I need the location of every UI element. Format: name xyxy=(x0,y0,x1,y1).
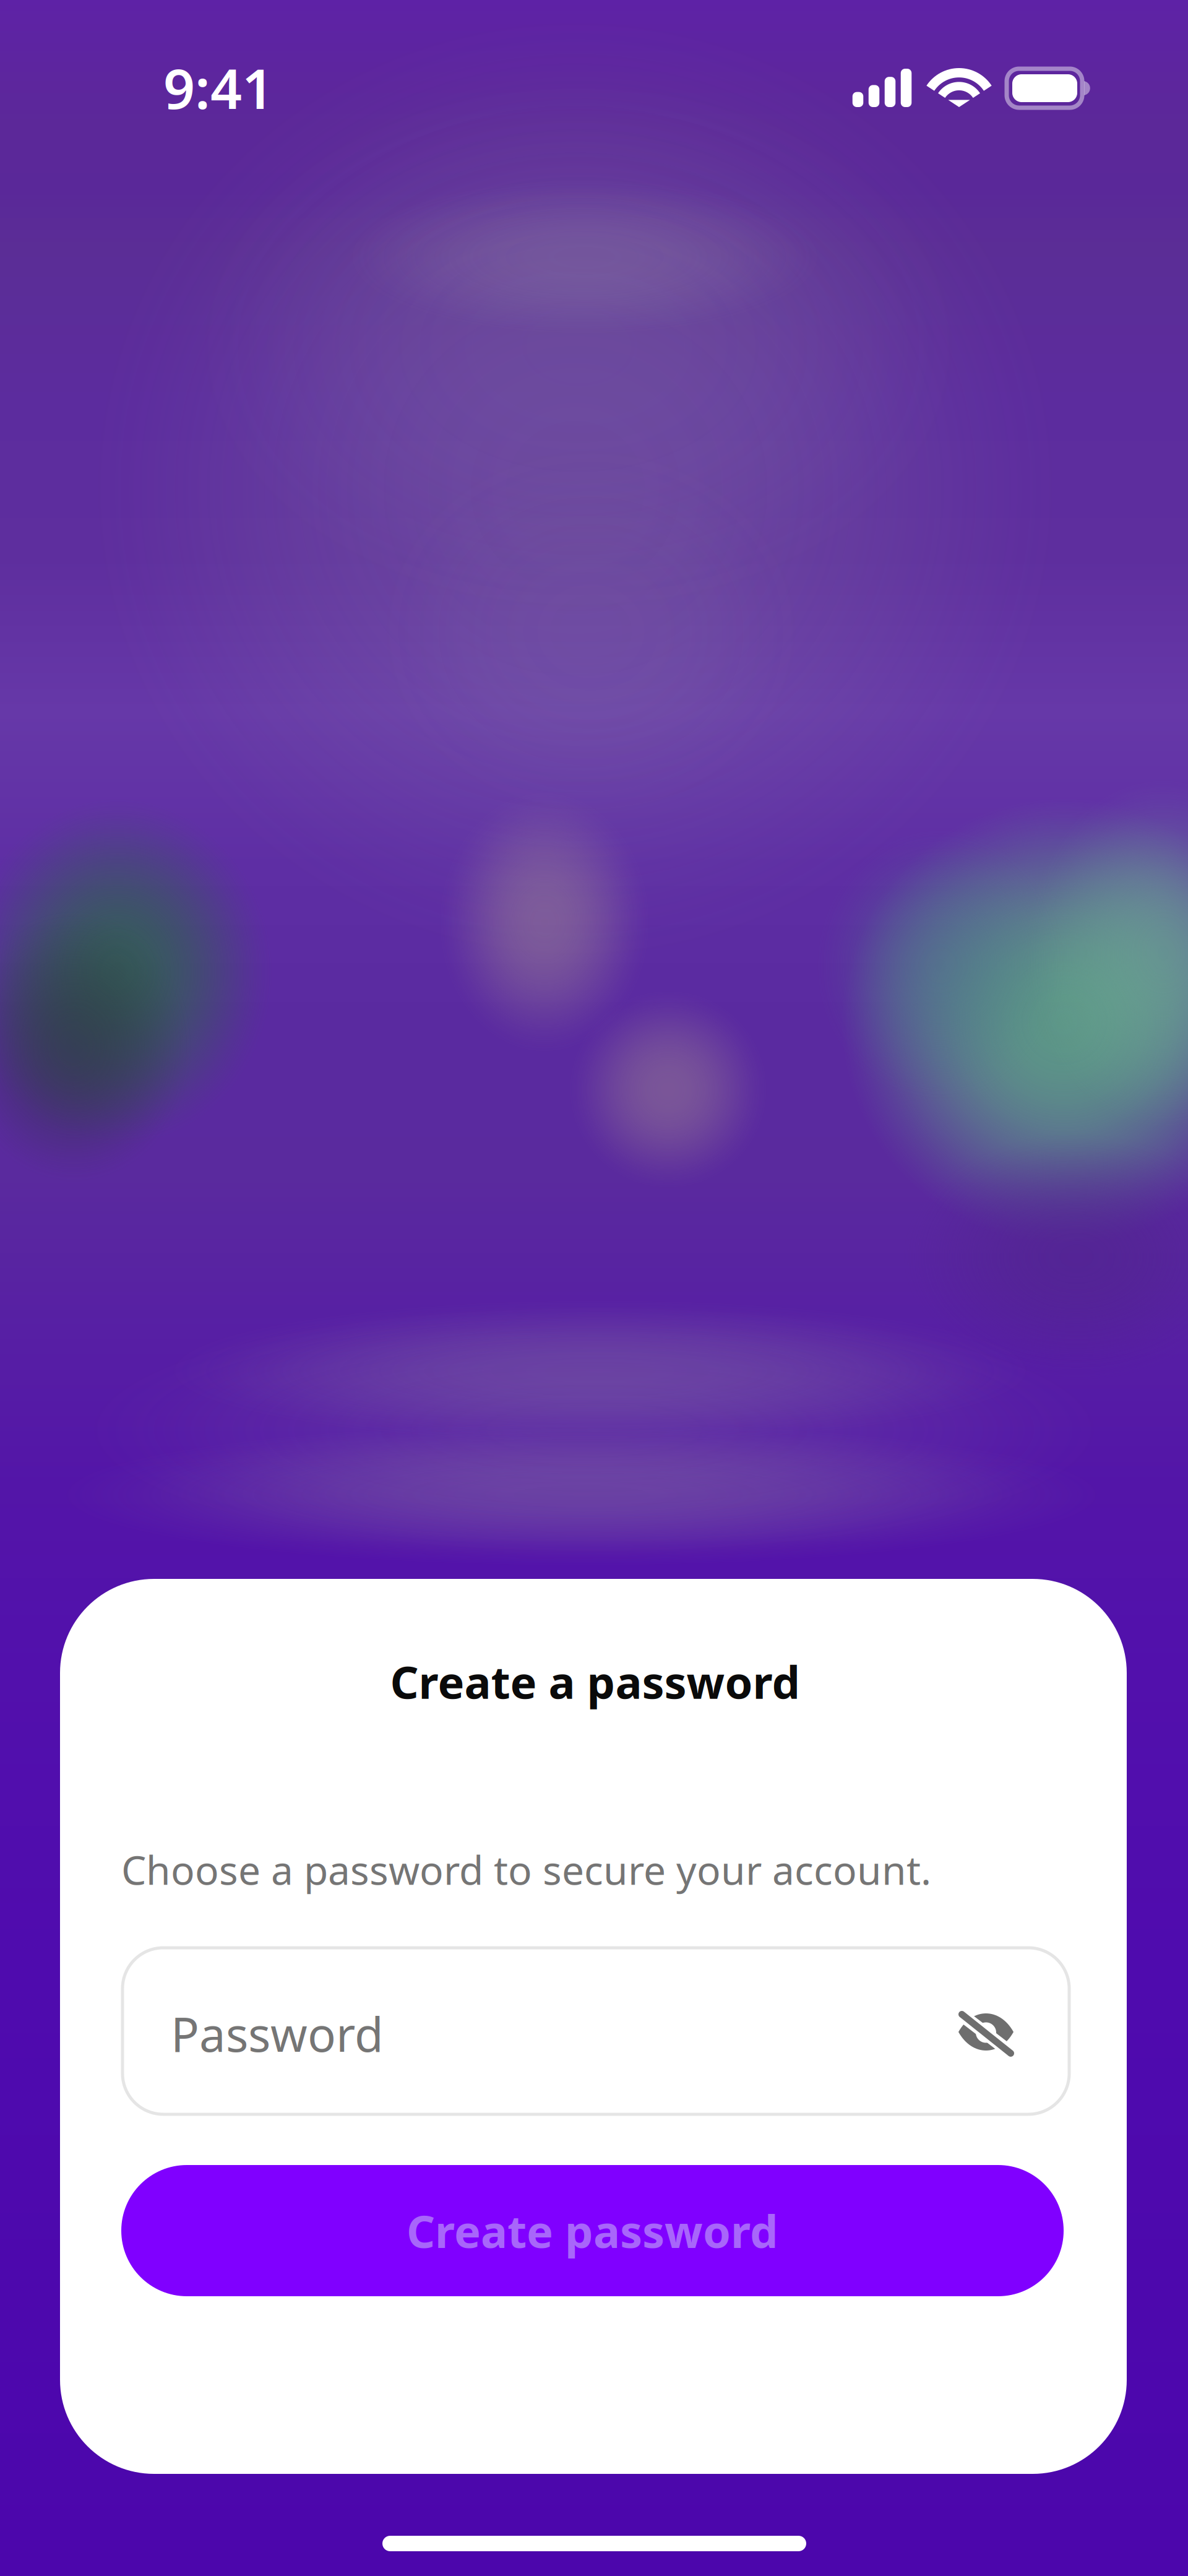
staticText: Choose a password to secure your account… xyxy=(121,1843,931,1896)
button[interactable]: Password xyxy=(123,1948,1069,2114)
button[interactable]: Create password xyxy=(121,2165,1064,2296)
staticText: Password xyxy=(171,2002,384,2065)
staticText: Create a password xyxy=(390,1652,800,1711)
staticText: 9:41 xyxy=(163,51,273,124)
staticText: Create password xyxy=(407,2201,778,2260)
